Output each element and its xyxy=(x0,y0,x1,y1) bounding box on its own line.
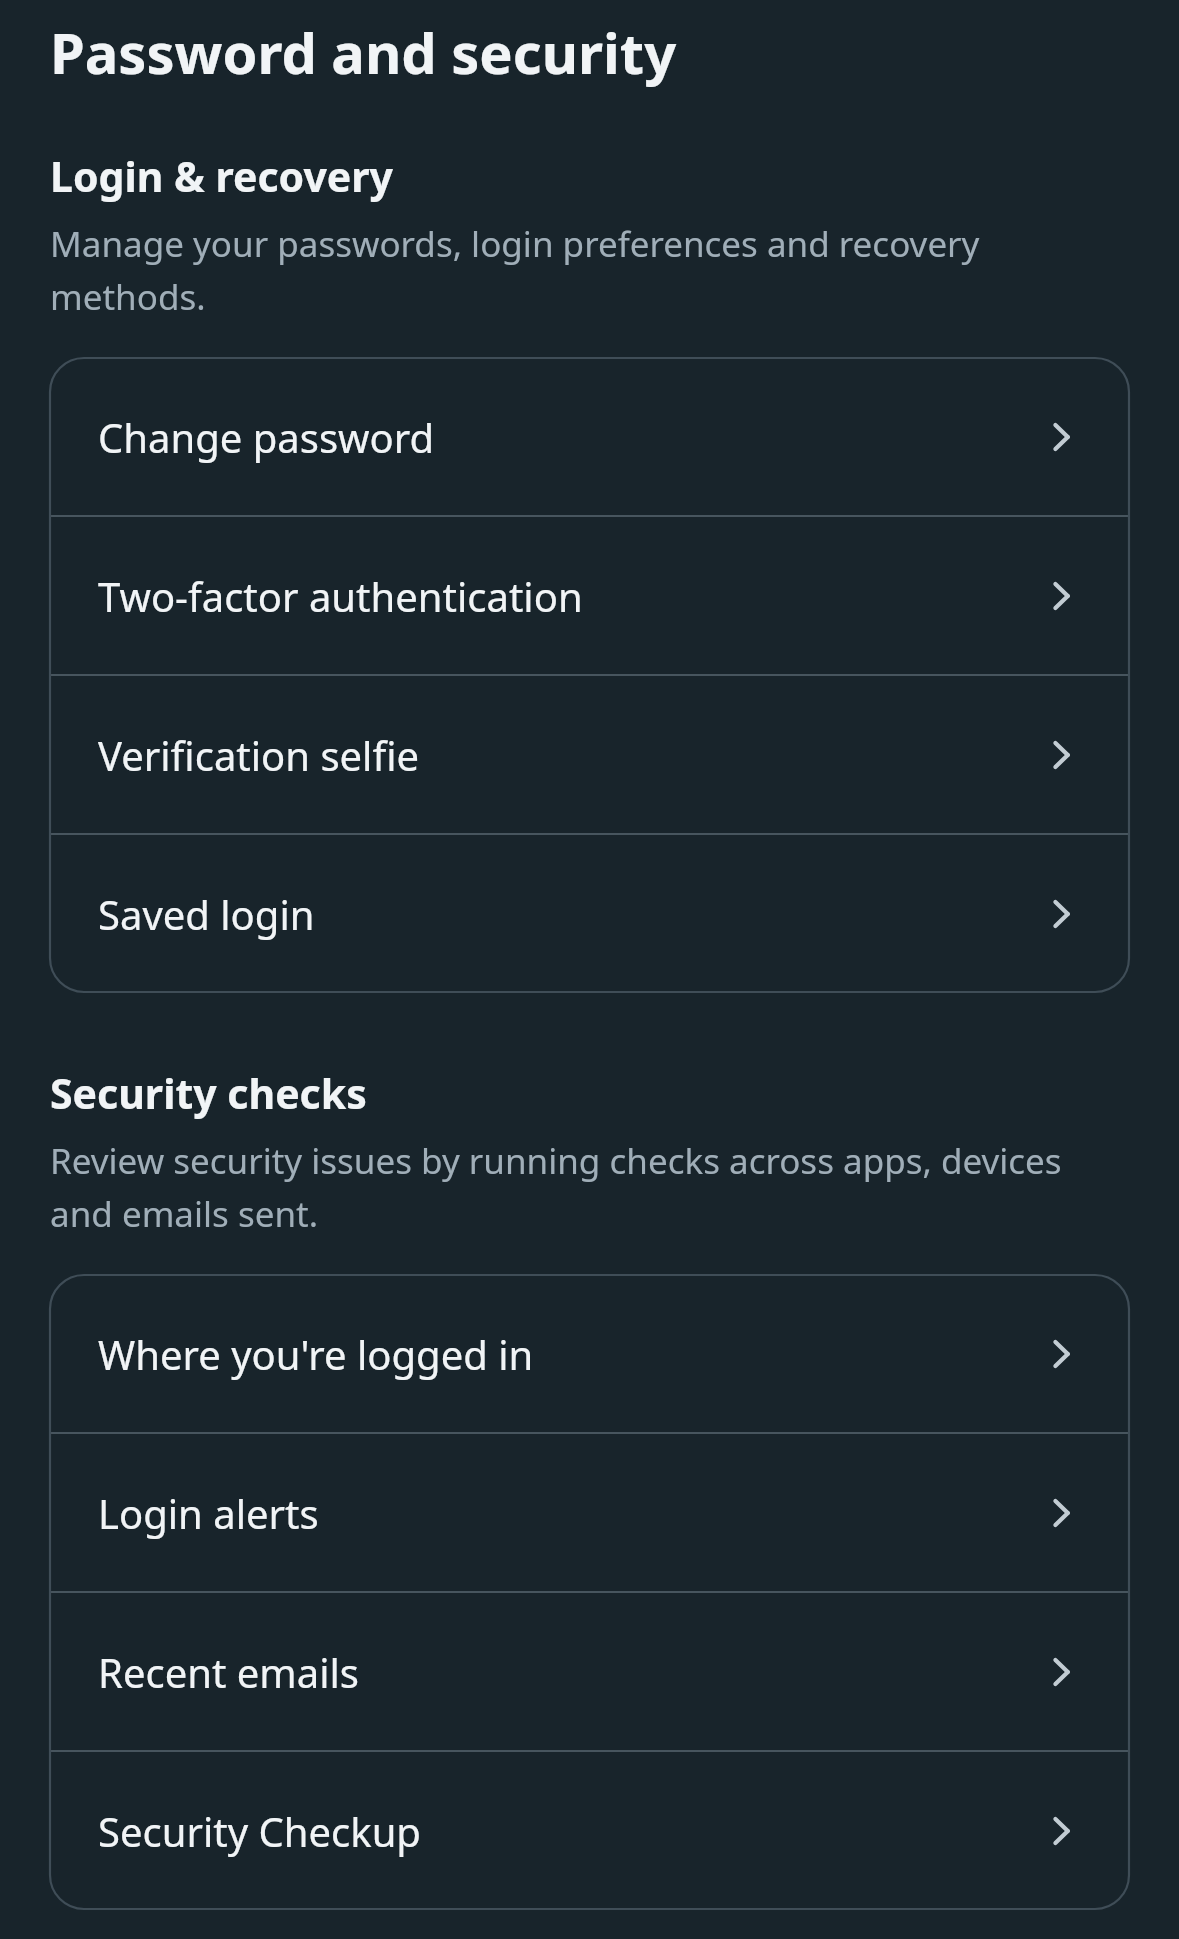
staticText: Saved login xyxy=(98,887,1033,941)
staticText: Security Checkup xyxy=(98,1804,1033,1858)
button[interactable]: Where you're logged in xyxy=(50,1275,1129,1432)
other: Change password xyxy=(1033,409,1089,465)
other: Two-factor authentication xyxy=(1033,568,1089,624)
button[interactable]: Login alerts xyxy=(50,1434,1129,1591)
other: Verification selfie xyxy=(1033,727,1089,783)
button[interactable]: Recent emails xyxy=(50,1593,1129,1750)
staticText: Password and security xyxy=(50,14,677,90)
staticText: Verification selfie xyxy=(98,728,1033,782)
staticText: Security checks xyxy=(50,1065,367,1121)
other: Where you're logged in xyxy=(1033,1326,1089,1382)
button[interactable]: Security Checkup xyxy=(50,1752,1129,1909)
staticText: Review security issues by running checks… xyxy=(50,1137,1129,1237)
staticText: Manage your passwords, login preferences… xyxy=(50,220,1129,320)
button[interactable]: Two-factor authentication xyxy=(50,517,1129,674)
staticText: Change password xyxy=(98,410,1033,464)
staticText: Login & recovery xyxy=(50,148,394,204)
other: Login alerts xyxy=(1033,1485,1089,1541)
staticText: Two-factor authentication xyxy=(98,569,1033,623)
other: Recent emails xyxy=(1033,1644,1089,1700)
other: Security Checkup xyxy=(1033,1803,1089,1859)
button[interactable]: Change password xyxy=(50,358,1129,515)
staticText: Recent emails xyxy=(98,1645,1033,1699)
staticText: Login alerts xyxy=(98,1486,1033,1540)
staticText: Where you're logged in xyxy=(98,1327,1033,1381)
other: Saved login xyxy=(1033,886,1089,942)
button[interactable]: Saved login xyxy=(50,835,1129,992)
button[interactable]: Verification selfie xyxy=(50,676,1129,833)
